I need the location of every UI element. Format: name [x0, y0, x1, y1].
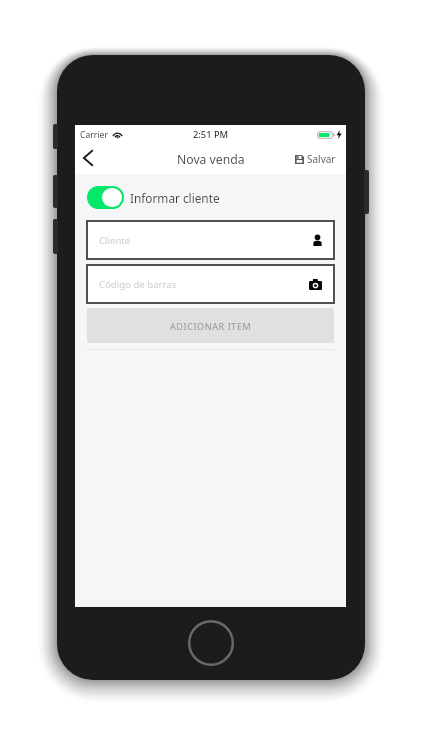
staticText: ADICIONAR ITEM	[170, 320, 252, 332]
staticText: Carrier	[80, 129, 108, 141]
staticText: Cliente	[99, 234, 131, 247]
button[interactable]: Salvar	[295, 152, 336, 166]
button[interactable]: Código de barras	[87, 265, 334, 303]
button[interactable]: Cliente	[87, 221, 334, 259]
button[interactable]: Back	[77, 143, 99, 173]
button[interactable]: ADICIONAR ITEM	[87, 308, 334, 343]
staticText: Informar cliente	[130, 190, 220, 206]
button[interactable]	[87, 186, 124, 209]
staticText: Salvar	[307, 152, 336, 166]
staticText: Nova venda	[177, 151, 245, 168]
staticText: Código de barras	[99, 278, 177, 291]
staticText: 2:51 PM	[193, 128, 229, 141]
